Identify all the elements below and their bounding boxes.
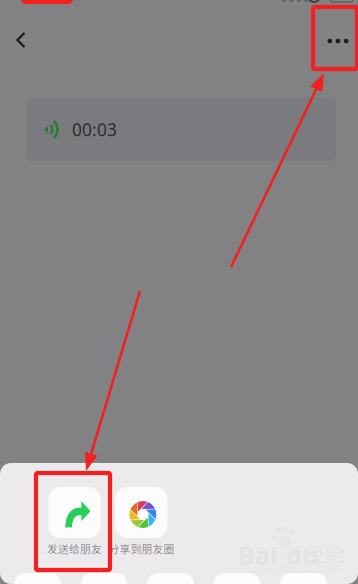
staticText: Bai [238,538,278,572]
staticText: 00:03 [72,118,117,141]
staticText: du [286,538,318,572]
staticText: jingyan.baidu.com [239,560,340,576]
button[interactable]: More options [316,19,358,63]
button[interactable]: 分享到朋友圈 [96,487,186,559]
staticText: 分享到朋友圈 [108,541,174,556]
staticText: 发送给朋友 [47,541,102,556]
staticText: 经验 [305,539,345,568]
button[interactable]: 发送给朋友 [29,487,119,559]
button[interactable]: Back [1,18,41,62]
